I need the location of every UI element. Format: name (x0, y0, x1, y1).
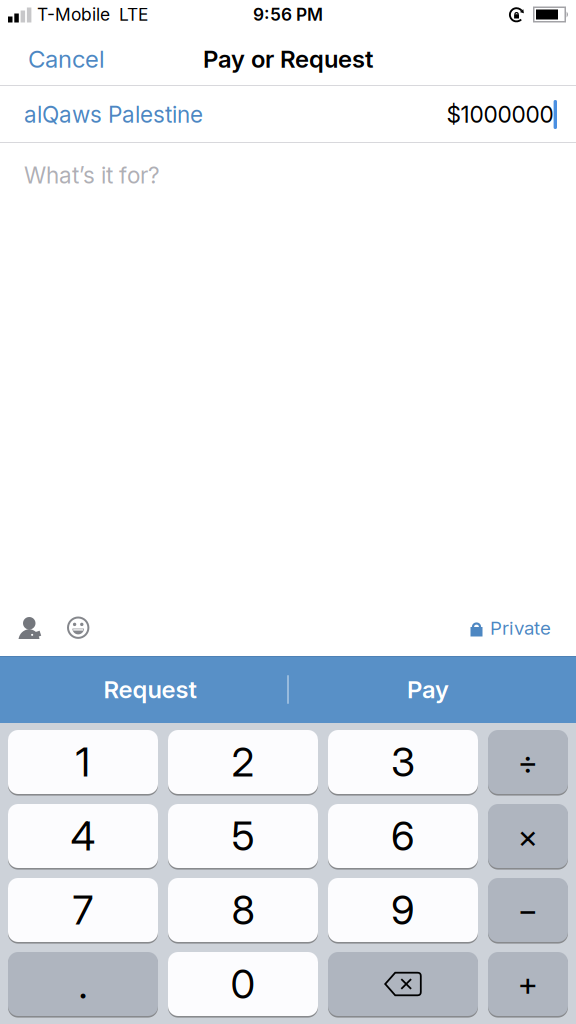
button[interactable]: Request (0, 656, 288, 723)
staticText: T-Mobile (37, 4, 110, 25)
button[interactable]: Add emoji (67, 616, 90, 639)
staticText: ÷ (517, 743, 538, 781)
button[interactable]: Mention a friend (18, 616, 42, 639)
button[interactable]: 3 (328, 730, 478, 794)
button[interactable]: 2 (168, 730, 318, 794)
button[interactable]: Audience: Private (470, 617, 551, 639)
staticText: 1 (75, 738, 90, 786)
button[interactable]: × (488, 804, 568, 868)
staticText: LTE (119, 4, 148, 25)
button[interactable]: 5 (168, 804, 318, 868)
button[interactable]: Pay (288, 656, 576, 723)
staticText: 7 (72, 886, 93, 934)
button[interactable]: 1 (8, 730, 158, 794)
staticText: Request (103, 675, 196, 704)
staticText: 8 (231, 886, 254, 934)
button[interactable]: Cancel (28, 45, 105, 73)
button[interactable]: 0 (168, 952, 318, 1016)
button[interactable]: alQaws Palestine (24, 101, 203, 128)
staticText: 9:56 PM (253, 4, 323, 25)
button[interactable]: 7 (8, 878, 158, 942)
staticText: + (517, 965, 538, 1003)
button[interactable]: . (8, 952, 158, 1016)
button[interactable]: 9 (328, 878, 478, 942)
staticText: Private (490, 617, 551, 639)
staticText: 5 (231, 812, 254, 860)
staticText: × (517, 817, 538, 855)
button[interactable]: Delete (328, 952, 478, 1016)
button[interactable]: ÷ (488, 730, 568, 794)
staticText: Pay or Request (203, 45, 373, 73)
staticText: . (78, 960, 87, 1008)
staticText: 9 (391, 886, 415, 934)
staticText: What’s it for? (24, 162, 160, 189)
staticText: Pay (407, 675, 449, 704)
staticText: 4 (70, 812, 95, 860)
staticText: Cancel (28, 45, 105, 73)
button[interactable]: + (488, 952, 568, 1016)
staticText: 3 (391, 738, 415, 786)
staticText: 6 (391, 812, 415, 860)
staticText: 0 (230, 960, 255, 1008)
button[interactable]: − (488, 878, 568, 942)
button[interactable]: 8 (168, 878, 318, 942)
button[interactable]: 6 (328, 804, 478, 868)
staticText: 2 (231, 738, 254, 786)
staticText: $1000000 (447, 101, 554, 128)
staticText: alQaws Palestine (24, 101, 203, 128)
button[interactable]: 4 (8, 804, 158, 868)
staticText: − (517, 891, 538, 929)
